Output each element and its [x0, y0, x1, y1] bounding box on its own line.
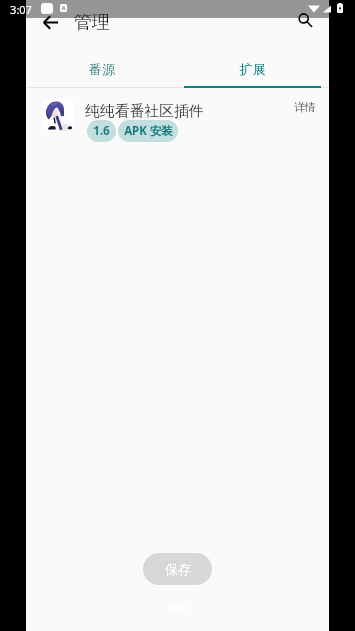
staticText: 保存	[165, 561, 191, 577]
staticText: 3:07	[10, 2, 32, 17]
staticText: 管理	[74, 11, 110, 34]
button[interactable]: 纯纯看番社区插件	[26, 94, 329, 146]
button[interactable]: Back	[36, 8, 64, 36]
button[interactable]: 保存	[143, 553, 212, 585]
button[interactable]: Search	[291, 7, 319, 35]
button[interactable]: APK 安装	[118, 120, 178, 142]
staticText: APK 安装	[124, 123, 173, 139]
button[interactable]: 1.6	[87, 120, 116, 142]
staticText: 扩展	[239, 61, 267, 77]
button[interactable]: 扩展	[177, 52, 329, 86]
staticText: 番源	[88, 61, 116, 77]
button[interactable]: 番源	[26, 52, 177, 86]
staticText: 1.6	[93, 123, 110, 139]
staticText: 详情	[294, 100, 316, 114]
staticText: A	[61, 4, 66, 12]
staticText: 纯纯看番社区插件	[85, 102, 204, 121]
